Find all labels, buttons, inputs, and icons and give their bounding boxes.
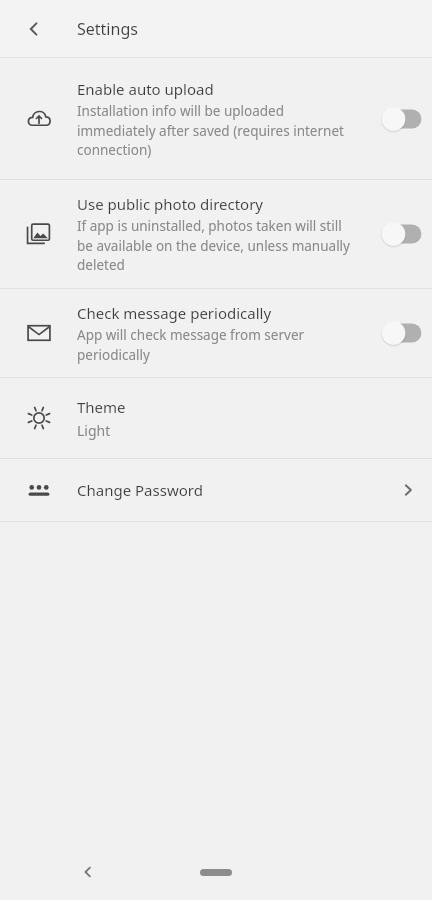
staticText: Use public photo directory bbox=[77, 194, 264, 214]
button[interactable]: Check message periodically bbox=[364, 289, 432, 377]
staticText: Enable auto upload bbox=[77, 79, 214, 99]
button[interactable]: Use public photo directory bbox=[364, 180, 432, 288]
staticText: Theme bbox=[77, 397, 126, 417]
staticText: App will check message from server perio… bbox=[77, 326, 352, 364]
staticText: Change Password bbox=[77, 480, 384, 500]
staticText: Light bbox=[77, 421, 111, 440]
button[interactable]: Back bbox=[12, 7, 56, 51]
button[interactable]: Use public photo directory bbox=[0, 180, 432, 288]
staticText: Check message periodically bbox=[77, 303, 272, 323]
staticText: If app is uninstalled, photos taken will… bbox=[77, 217, 352, 274]
button[interactable]: Theme bbox=[0, 378, 432, 458]
button[interactable]: System back bbox=[68, 852, 108, 892]
button[interactable]: Change Password bbox=[0, 459, 432, 521]
staticText: Settings bbox=[77, 18, 138, 40]
staticText: Installation info will be uploaded immed… bbox=[77, 102, 352, 159]
button[interactable]: Enable auto upload bbox=[0, 59, 432, 179]
button[interactable]: Check message periodically bbox=[0, 289, 432, 377]
button[interactable]: Enable auto upload bbox=[364, 59, 432, 179]
button[interactable]: Home bbox=[200, 869, 232, 876]
